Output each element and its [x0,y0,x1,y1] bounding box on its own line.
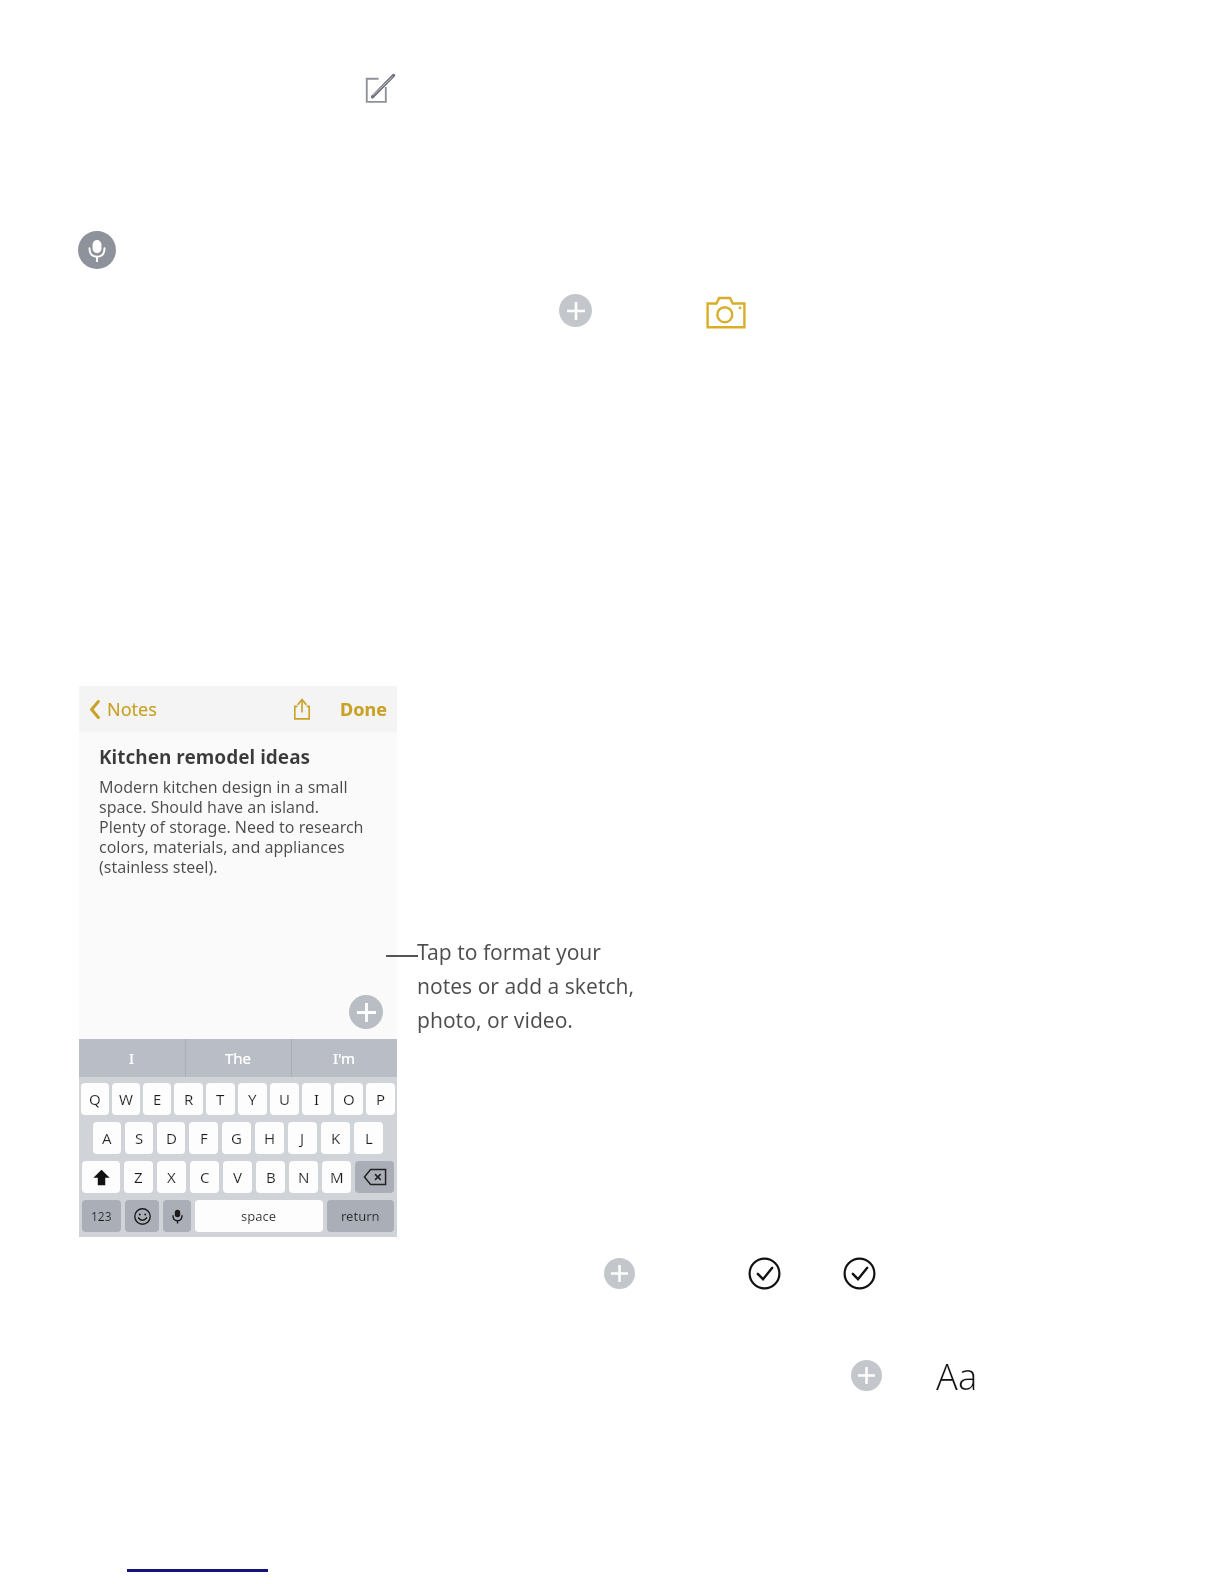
staticText: The [225,1048,252,1068]
button[interactable] [163,1200,191,1232]
staticText: V [233,1167,243,1187]
button[interactable]: H [255,1122,284,1154]
button[interactable]: U [270,1083,299,1115]
button[interactable]: M [322,1161,351,1193]
button[interactable]: Done [340,697,387,722]
staticText: F [200,1128,208,1148]
staticText: Aa [936,1352,978,1401]
staticText: Tap to format your [417,938,602,967]
button[interactable]: N [289,1161,318,1193]
button[interactable]: Z [124,1161,153,1193]
button[interactable] [82,1161,120,1193]
button[interactable]: Compose new note [362,72,396,106]
button[interactable]: D [157,1122,185,1154]
button[interactable]: Checklist [748,1257,781,1290]
staticText: space [241,1207,277,1225]
staticText: 123 [91,1208,112,1224]
staticText: U [279,1089,290,1109]
button[interactable]: G [222,1122,251,1154]
staticText: Z [134,1167,143,1187]
button[interactable]: F [189,1122,218,1154]
staticText: Notes [107,697,157,722]
button[interactable]: W [112,1083,140,1115]
button[interactable] [355,1161,394,1193]
staticText: X [167,1167,176,1187]
staticText: L [365,1128,373,1148]
staticText: W [119,1089,133,1109]
button[interactable]: Share [293,698,311,720]
button[interactable]: Y [238,1083,267,1115]
staticText: M [330,1167,344,1187]
button[interactable]: I'm [292,1039,397,1077]
button[interactable]: V [223,1161,252,1193]
staticText: A [102,1128,112,1148]
staticText: K [331,1128,341,1148]
button[interactable]: 123 [82,1200,121,1232]
button[interactable]: L [354,1122,383,1154]
staticText: Modern kitchen design in a small space. … [99,776,364,877]
button[interactable]: R [174,1083,203,1115]
button[interactable]: Add [851,1360,882,1391]
button[interactable]: I [302,1083,331,1115]
staticText: E [153,1089,162,1109]
button[interactable]: Checklist [843,1257,876,1290]
staticText: Q [89,1089,101,1109]
button[interactable]: J [288,1122,317,1154]
staticText: Y [248,1089,257,1109]
button[interactable]: Take photo [706,296,746,330]
button[interactable]: S [125,1122,153,1154]
button[interactable] [125,1200,159,1232]
button[interactable]: B [256,1161,285,1193]
staticText: I'm [333,1048,356,1068]
staticText: T [216,1089,225,1109]
button[interactable]: X [157,1161,186,1193]
button[interactable]: return [327,1200,394,1232]
staticText: C [200,1167,210,1187]
button[interactable]: E [143,1083,171,1115]
button[interactable]: I [79,1039,185,1077]
button[interactable]: Add [559,294,592,327]
staticText: Done [340,697,387,722]
button[interactable]: T [206,1083,235,1115]
staticText: return [341,1207,380,1225]
staticText: D [166,1128,177,1148]
button[interactable]: Text formatting [936,1352,978,1401]
button[interactable]: C [190,1161,219,1193]
staticText: O [343,1089,355,1109]
staticText: photo, or video. [417,1006,573,1035]
button[interactable]: O [334,1083,363,1115]
staticText: I [314,1089,320,1109]
staticText: R [184,1089,194,1109]
staticText: G [231,1128,242,1148]
button[interactable]: P [366,1083,395,1115]
button[interactable]: The [186,1039,291,1077]
button[interactable]: Q [81,1083,109,1115]
staticText: J [300,1128,305,1148]
staticText: N [298,1167,310,1187]
staticText: H [264,1128,276,1148]
staticText: P [376,1089,386,1109]
staticText: notes or add a sketch, [417,972,635,1001]
staticText: I [129,1048,135,1068]
button[interactable]: space [195,1200,323,1232]
button[interactable]: Dictate [78,231,116,269]
button[interactable]: Add [604,1258,635,1289]
staticText: Kitchen remodel ideas [99,744,311,770]
button[interactable]: Notes [89,697,157,722]
staticText: B [266,1167,276,1187]
button[interactable]: K [321,1122,350,1154]
button[interactable]: Format note [349,995,383,1029]
button[interactable]: A [93,1122,121,1154]
staticText: S [135,1128,144,1148]
